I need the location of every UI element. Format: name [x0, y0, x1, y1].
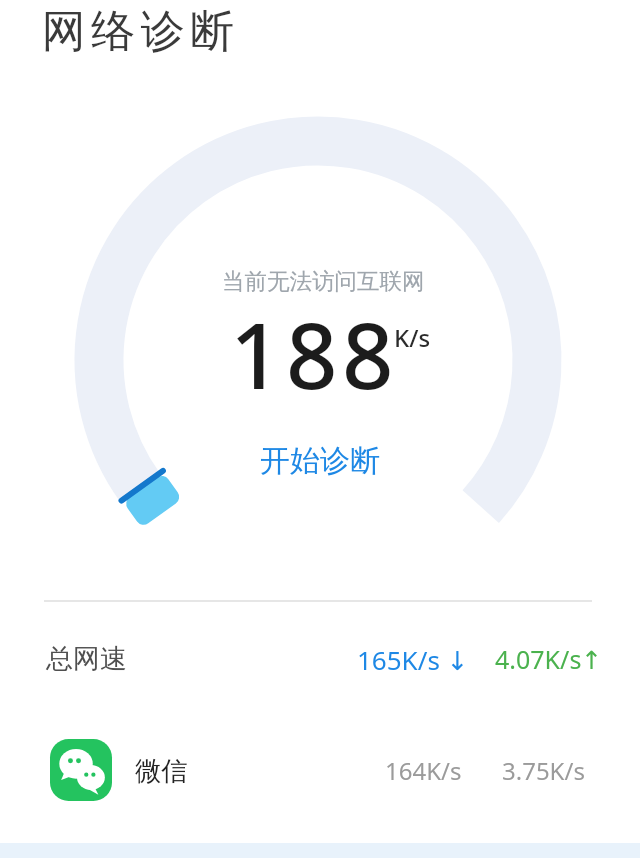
staticText: 微信	[135, 754, 188, 787]
staticText: 188	[230, 293, 398, 416]
staticText: K/s	[394, 321, 431, 354]
staticText: 开始诊断	[260, 442, 380, 480]
staticText: 4.07K/s↑	[495, 642, 603, 676]
staticText: 总网速	[46, 642, 127, 676]
button[interactable]: 微信	[0, 739, 640, 801]
staticText: 网络诊断	[39, 4, 237, 59]
staticText: 3.75K/s	[502, 754, 585, 787]
staticText: 当前无法访问互联网	[222, 267, 425, 295]
button[interactable]: 开始诊断	[248, 436, 392, 486]
staticText: 165K/s ↓	[357, 642, 469, 677]
staticText: 164K/s	[385, 754, 462, 787]
button[interactable]: 总网速	[0, 639, 640, 679]
